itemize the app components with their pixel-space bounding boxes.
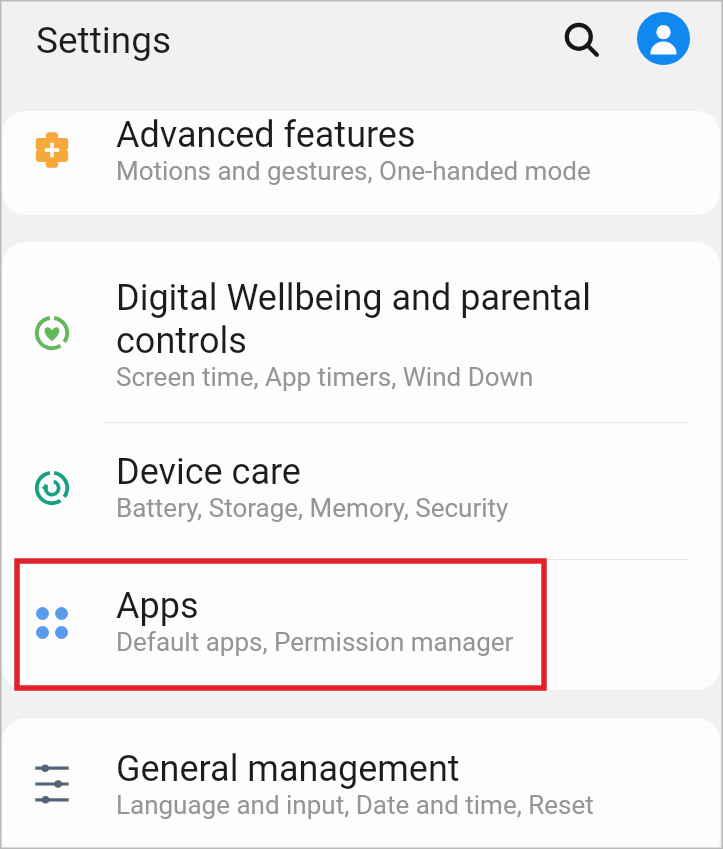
button[interactable]: Device care <box>2 423 720 559</box>
button[interactable]: Search <box>554 12 610 68</box>
staticText: Device care <box>116 451 301 493</box>
staticText: Motions and gestures, One-handed mode <box>116 156 591 186</box>
button[interactable]: Advanced features <box>2 111 720 215</box>
button[interactable]: General management <box>2 718 720 849</box>
button[interactable]: Apps <box>2 560 720 690</box>
button[interactable]: Digital Wellbeing and parental controls <box>2 242 720 422</box>
staticText: Language and input, Date and time, Reset <box>116 790 594 820</box>
button[interactable]: Account <box>635 10 691 66</box>
staticText: Battery, Storage, Memory, Security <box>116 493 509 523</box>
staticText: General management <box>116 748 460 790</box>
staticText: Advanced features <box>116 114 416 156</box>
staticText: Settings <box>36 19 172 62</box>
staticText: Apps <box>116 585 199 627</box>
staticText: Screen time, App timers, Wind Down <box>116 362 534 392</box>
staticText: Default apps, Permission manager <box>116 627 514 657</box>
staticText: Digital Wellbeing and parental controls <box>116 277 594 362</box>
